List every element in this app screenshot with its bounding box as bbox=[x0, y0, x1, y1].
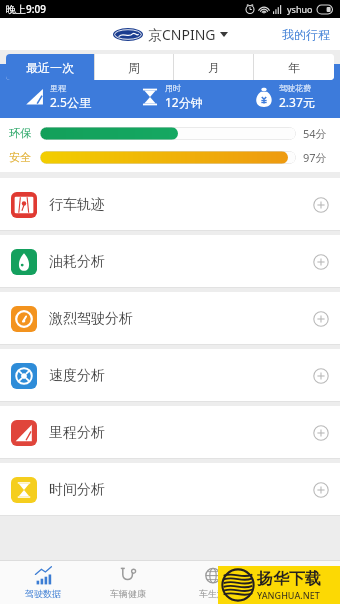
staticText: 用时 bbox=[165, 83, 181, 93]
staticText: 里程 bbox=[50, 83, 66, 93]
staticText: 驾驶花费 bbox=[279, 83, 311, 93]
button[interactable]: 油耗分析 bbox=[0, 235, 340, 288]
staticText: 我的行程 bbox=[282, 27, 330, 42]
button[interactable]: 月 bbox=[174, 54, 254, 80]
staticText: 2.5公里 bbox=[50, 94, 91, 110]
staticText: 油耗分析 bbox=[49, 253, 105, 271]
other: 展开 里程分析 bbox=[313, 425, 329, 441]
other: 展开 速度分析 bbox=[313, 368, 329, 384]
staticText: 扬华下载 bbox=[257, 569, 321, 589]
staticText: 最近一次 bbox=[26, 60, 74, 75]
button[interactable]: 我的行程 bbox=[272, 23, 340, 46]
button[interactable]: 年 bbox=[254, 54, 334, 80]
staticText: 行车轨迹 bbox=[49, 196, 105, 214]
staticText: yshuo bbox=[287, 3, 313, 15]
button[interactable]: 车生活 bbox=[170, 561, 255, 604]
staticText: 10/23 19:41-10/23 19:53 bbox=[119, 64, 221, 75]
staticText: 97分 bbox=[303, 150, 331, 165]
button[interactable]: 车辆健康 bbox=[85, 561, 170, 604]
staticText: 周 bbox=[128, 60, 140, 75]
button[interactable]: 时间分析 bbox=[0, 463, 340, 516]
staticText: 时间分析 bbox=[49, 481, 105, 499]
staticText: YANGHUA.NET bbox=[257, 589, 320, 601]
button[interactable]: 京CNPING bbox=[113, 25, 228, 44]
button[interactable]: 速度分析 bbox=[0, 349, 340, 402]
staticText: 月 bbox=[208, 60, 220, 75]
staticText: 我的 bbox=[289, 588, 307, 599]
staticText: 车辆健康 bbox=[110, 588, 146, 599]
staticText: 驾驶数据 bbox=[25, 588, 61, 599]
other: 展开 行车轨迹 bbox=[313, 197, 329, 213]
other: 展开 时间分析 bbox=[313, 482, 329, 498]
staticText: 速度分析 bbox=[49, 367, 105, 385]
staticText: 年 bbox=[288, 60, 300, 75]
staticText: 54分 bbox=[303, 126, 331, 141]
staticText: 车生活 bbox=[199, 588, 226, 599]
button[interactable]: 里程 bbox=[0, 83, 114, 110]
button[interactable]: 周 bbox=[94, 54, 174, 80]
staticText: 2.37元 bbox=[279, 94, 315, 110]
button[interactable]: 用时 bbox=[114, 83, 227, 110]
staticText: 激烈驾驶分析 bbox=[49, 310, 133, 328]
button[interactable]: 里程分析 bbox=[0, 406, 340, 459]
button[interactable]: 我的 bbox=[255, 561, 340, 604]
button[interactable]: 行车轨迹 bbox=[0, 178, 340, 231]
staticText: 安全 bbox=[9, 150, 37, 164]
staticText: 环保 bbox=[9, 126, 37, 140]
button[interactable]: 驾驶花费 bbox=[227, 83, 340, 110]
staticText: 晚上9:09 bbox=[6, 2, 46, 16]
button[interactable]: 最近一次 bbox=[6, 54, 94, 80]
staticText: 里程分析 bbox=[49, 424, 105, 442]
other: 展开 激烈驾驶分析 bbox=[313, 311, 329, 327]
staticText: 12分钟 bbox=[165, 94, 203, 110]
button[interactable]: 激烈驾驶分析 bbox=[0, 292, 340, 345]
staticText: 京CNPING bbox=[148, 25, 216, 44]
other: 展开 油耗分析 bbox=[313, 254, 329, 270]
button[interactable]: 驾驶数据 bbox=[0, 561, 85, 604]
